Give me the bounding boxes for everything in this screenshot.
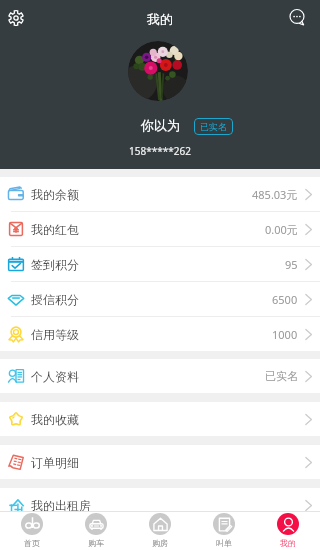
button[interactable]: Avatar — [128, 41, 188, 101]
staticText: 叫单 — [216, 538, 232, 548]
button[interactable]: 已实名 — [194, 118, 233, 135]
staticText: 我的 — [147, 11, 173, 27]
button[interactable]: 我的余额 — [0, 177, 320, 211]
staticText: 我的红包 — [31, 222, 79, 237]
button[interactable]: 购房 — [128, 512, 192, 550]
staticText: 158*****262 — [129, 144, 191, 158]
staticText: 我的余额 — [31, 187, 79, 202]
button[interactable]: 个人资料 — [0, 359, 320, 393]
staticText: 授信积分 — [31, 292, 79, 307]
button[interactable]: 首页 — [0, 512, 64, 550]
staticText: 个人资料 — [31, 369, 79, 384]
staticText: 信用等级 — [31, 327, 79, 342]
button[interactable]: 我的红包 — [0, 212, 320, 246]
button[interactable]: 我的收藏 — [0, 402, 320, 436]
staticText: 购房 — [152, 538, 168, 548]
button[interactable]: Settings — [0, 2, 31, 33]
button[interactable]: 订单明细 — [0, 445, 320, 479]
staticText: 签到积分 — [31, 257, 79, 272]
staticText: 我的收藏 — [31, 412, 79, 427]
staticText: 我的 — [280, 538, 296, 548]
staticText: 1000 — [272, 327, 298, 342]
button[interactable]: 我的 — [256, 512, 320, 550]
button[interactable]: 我的出租房 — [0, 488, 320, 522]
staticText: 首页 — [24, 538, 40, 548]
staticText: 6500 — [272, 292, 298, 307]
button[interactable]: 信用等级 — [0, 317, 320, 351]
staticText: 我的出租房 — [31, 498, 91, 513]
staticText: 95 — [285, 257, 298, 272]
staticText: 已实名 — [200, 121, 227, 132]
staticText: 订单明细 — [31, 455, 79, 470]
staticText: 购车 — [88, 538, 104, 548]
staticText: 0.00元 — [265, 222, 298, 237]
button[interactable]: 授信积分 — [0, 282, 320, 316]
button[interactable]: Messages — [282, 2, 313, 33]
staticText: 485.03元 — [252, 187, 298, 202]
button[interactable]: 购车 — [64, 512, 128, 550]
staticText: 已实名 — [265, 369, 298, 383]
button[interactable]: 签到积分 — [0, 247, 320, 281]
staticText: 你以为 — [141, 117, 180, 133]
button[interactable]: 叫单 — [192, 512, 256, 550]
